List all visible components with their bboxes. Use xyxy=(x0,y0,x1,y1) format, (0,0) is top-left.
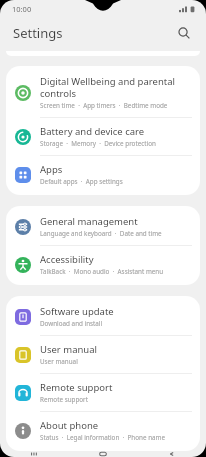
staticText: Remote support xyxy=(40,381,113,394)
staticText: Software update xyxy=(40,305,114,318)
staticText: User manual xyxy=(40,357,78,366)
button[interactable]: Digital Wellbeing and parental controls xyxy=(6,68,200,117)
staticText: Download and install xyxy=(40,319,103,328)
staticText: 10:00 xyxy=(12,4,32,14)
button[interactable]: Search xyxy=(172,21,196,45)
staticText: Remote support xyxy=(40,395,88,404)
button[interactable]: Remote support xyxy=(6,374,200,411)
button[interactable]: General management xyxy=(6,208,200,245)
staticText: Accessibility xyxy=(40,253,94,266)
button[interactable]: Software update xyxy=(6,298,200,335)
staticText: Status · Legal information · Phone name xyxy=(40,433,165,442)
staticText: Default apps · App settings xyxy=(40,177,123,186)
button[interactable]: Accessibility xyxy=(6,246,200,283)
button[interactable]: About phone xyxy=(6,412,200,449)
staticText: Digital Wellbeing and parental controls xyxy=(40,75,190,100)
button[interactable]: Apps xyxy=(6,156,200,193)
button[interactable]: Battery and device care xyxy=(6,118,200,155)
button[interactable]: Home xyxy=(68,451,137,457)
staticText: User manual xyxy=(40,343,97,356)
button[interactable]: Recent apps xyxy=(0,451,68,457)
button[interactable]: User manual xyxy=(6,336,200,373)
staticText: General management xyxy=(40,215,138,228)
staticText: Language and keyboard · Date and time xyxy=(40,229,162,238)
staticText: About phone xyxy=(40,419,99,432)
staticText: Storage · Memory · Device protection xyxy=(40,139,156,148)
staticText: Battery and device care xyxy=(40,125,145,138)
staticText: Settings xyxy=(13,24,63,42)
staticText: TalkBack · Mono audio · Assistant menu xyxy=(40,267,164,276)
button[interactable]: Back xyxy=(137,451,206,457)
staticText: Apps xyxy=(40,163,63,176)
staticText: Screen time · App timers · Bedtime mode xyxy=(40,101,168,110)
